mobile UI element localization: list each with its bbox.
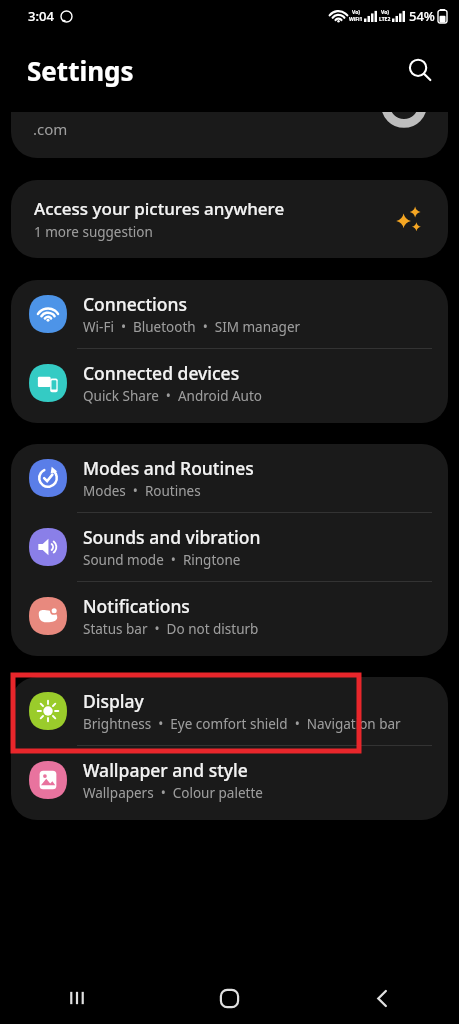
staticText: Wi-Fi • Bluetooth • SIM manager <box>83 318 301 336</box>
staticText: 3:04 <box>28 7 54 25</box>
staticText: Brightness • Eye comfort shield • Naviga… <box>83 715 401 733</box>
staticText: Modes and Routines <box>83 456 254 480</box>
button[interactable]: Notifications <box>11 582 448 650</box>
button[interactable]: Home <box>153 972 306 1024</box>
staticText: Connected devices <box>83 361 240 385</box>
staticText: Sound mode • Ringtone <box>83 551 241 569</box>
staticText: Quick Share • Android Auto <box>83 387 262 405</box>
button[interactable]: Access your pictures anywhere <box>11 180 448 258</box>
button[interactable]: Sounds and vibration <box>11 513 448 581</box>
button[interactable]: Modes and Routines <box>11 444 448 512</box>
button[interactable]: Display <box>11 677 448 745</box>
staticText: LTE2 <box>379 16 391 23</box>
staticText: Wallpaper and style <box>83 758 248 782</box>
staticText: Display <box>83 689 144 713</box>
staticText: 1 more suggestion <box>34 223 153 241</box>
staticText: Wallpapers • Colour palette <box>83 784 263 802</box>
staticText: Modes • Routines <box>83 482 201 500</box>
staticText: WiFi1 <box>349 16 363 23</box>
button[interactable]: Back <box>306 972 459 1024</box>
button[interactable]: Connected devices <box>11 349 448 417</box>
staticText: Connections <box>83 292 187 316</box>
staticText: Vo) <box>381 9 389 16</box>
staticText: Vo) <box>352 9 360 16</box>
staticText: Status bar • Do not disturb <box>83 620 259 638</box>
button[interactable]: Search <box>397 47 443 93</box>
staticText: Access your pictures anywhere <box>34 197 285 220</box>
button[interactable]: Wallpaper and style <box>11 746 448 814</box>
button[interactable]: .com <box>11 112 448 158</box>
button[interactable]: Recents <box>0 972 153 1024</box>
staticText: .com <box>33 119 68 139</box>
staticText: Sounds and vibration <box>83 525 261 549</box>
button[interactable]: Connections <box>11 280 448 348</box>
staticText: 54% <box>409 7 435 25</box>
staticText: Settings <box>27 53 134 88</box>
staticText: Notifications <box>83 594 190 618</box>
